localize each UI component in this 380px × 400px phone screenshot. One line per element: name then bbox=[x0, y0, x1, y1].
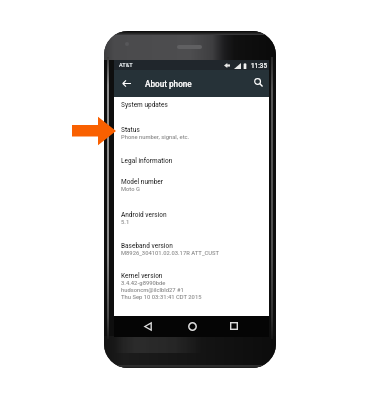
staticText: AT&T bbox=[119, 62, 133, 69]
staticText: Phone number, signal, etc. bbox=[121, 134, 190, 141]
button[interactable]: Kernel version bbox=[114, 268, 269, 315]
button[interactable]: Navigate up bbox=[117, 74, 136, 93]
staticText: Baseband version bbox=[121, 242, 173, 250]
staticText: 11:35 bbox=[251, 62, 267, 69]
button[interactable]: Home bbox=[182, 316, 202, 336]
staticText: M8926_304101.02.03.17R ATT_CUST bbox=[121, 250, 220, 257]
button[interactable]: Baseband version bbox=[114, 238, 269, 269]
staticText: Model number bbox=[121, 178, 164, 186]
button[interactable]: System updates bbox=[114, 97, 269, 123]
staticText: Kernel version bbox=[121, 272, 163, 280]
button[interactable]: Android version bbox=[114, 207, 269, 238]
staticText: hudsoncm@ilclbld27 #1 bbox=[121, 287, 184, 294]
staticText: 5.1 bbox=[121, 219, 130, 226]
other: Pointer bbox=[72, 116, 116, 146]
button[interactable]: Legal information bbox=[114, 153, 269, 174]
staticText: Moto G bbox=[121, 186, 140, 193]
staticText: About phone bbox=[145, 79, 192, 89]
button[interactable]: Back bbox=[138, 316, 158, 336]
button[interactable]: Search bbox=[249, 73, 268, 92]
staticText: Thu Sep 10 03:31:41 CDT 2015 bbox=[121, 294, 202, 301]
button[interactable]: Status bbox=[114, 122, 269, 153]
staticText: Legal information bbox=[121, 157, 173, 165]
staticText: Status bbox=[121, 126, 140, 134]
staticText: System updates bbox=[121, 101, 168, 109]
staticText: Android version bbox=[121, 211, 167, 219]
staticText: 3.4.42-g8990bde bbox=[121, 280, 166, 287]
button[interactable]: Recent apps bbox=[224, 316, 244, 336]
button[interactable]: Model number bbox=[114, 174, 269, 206]
